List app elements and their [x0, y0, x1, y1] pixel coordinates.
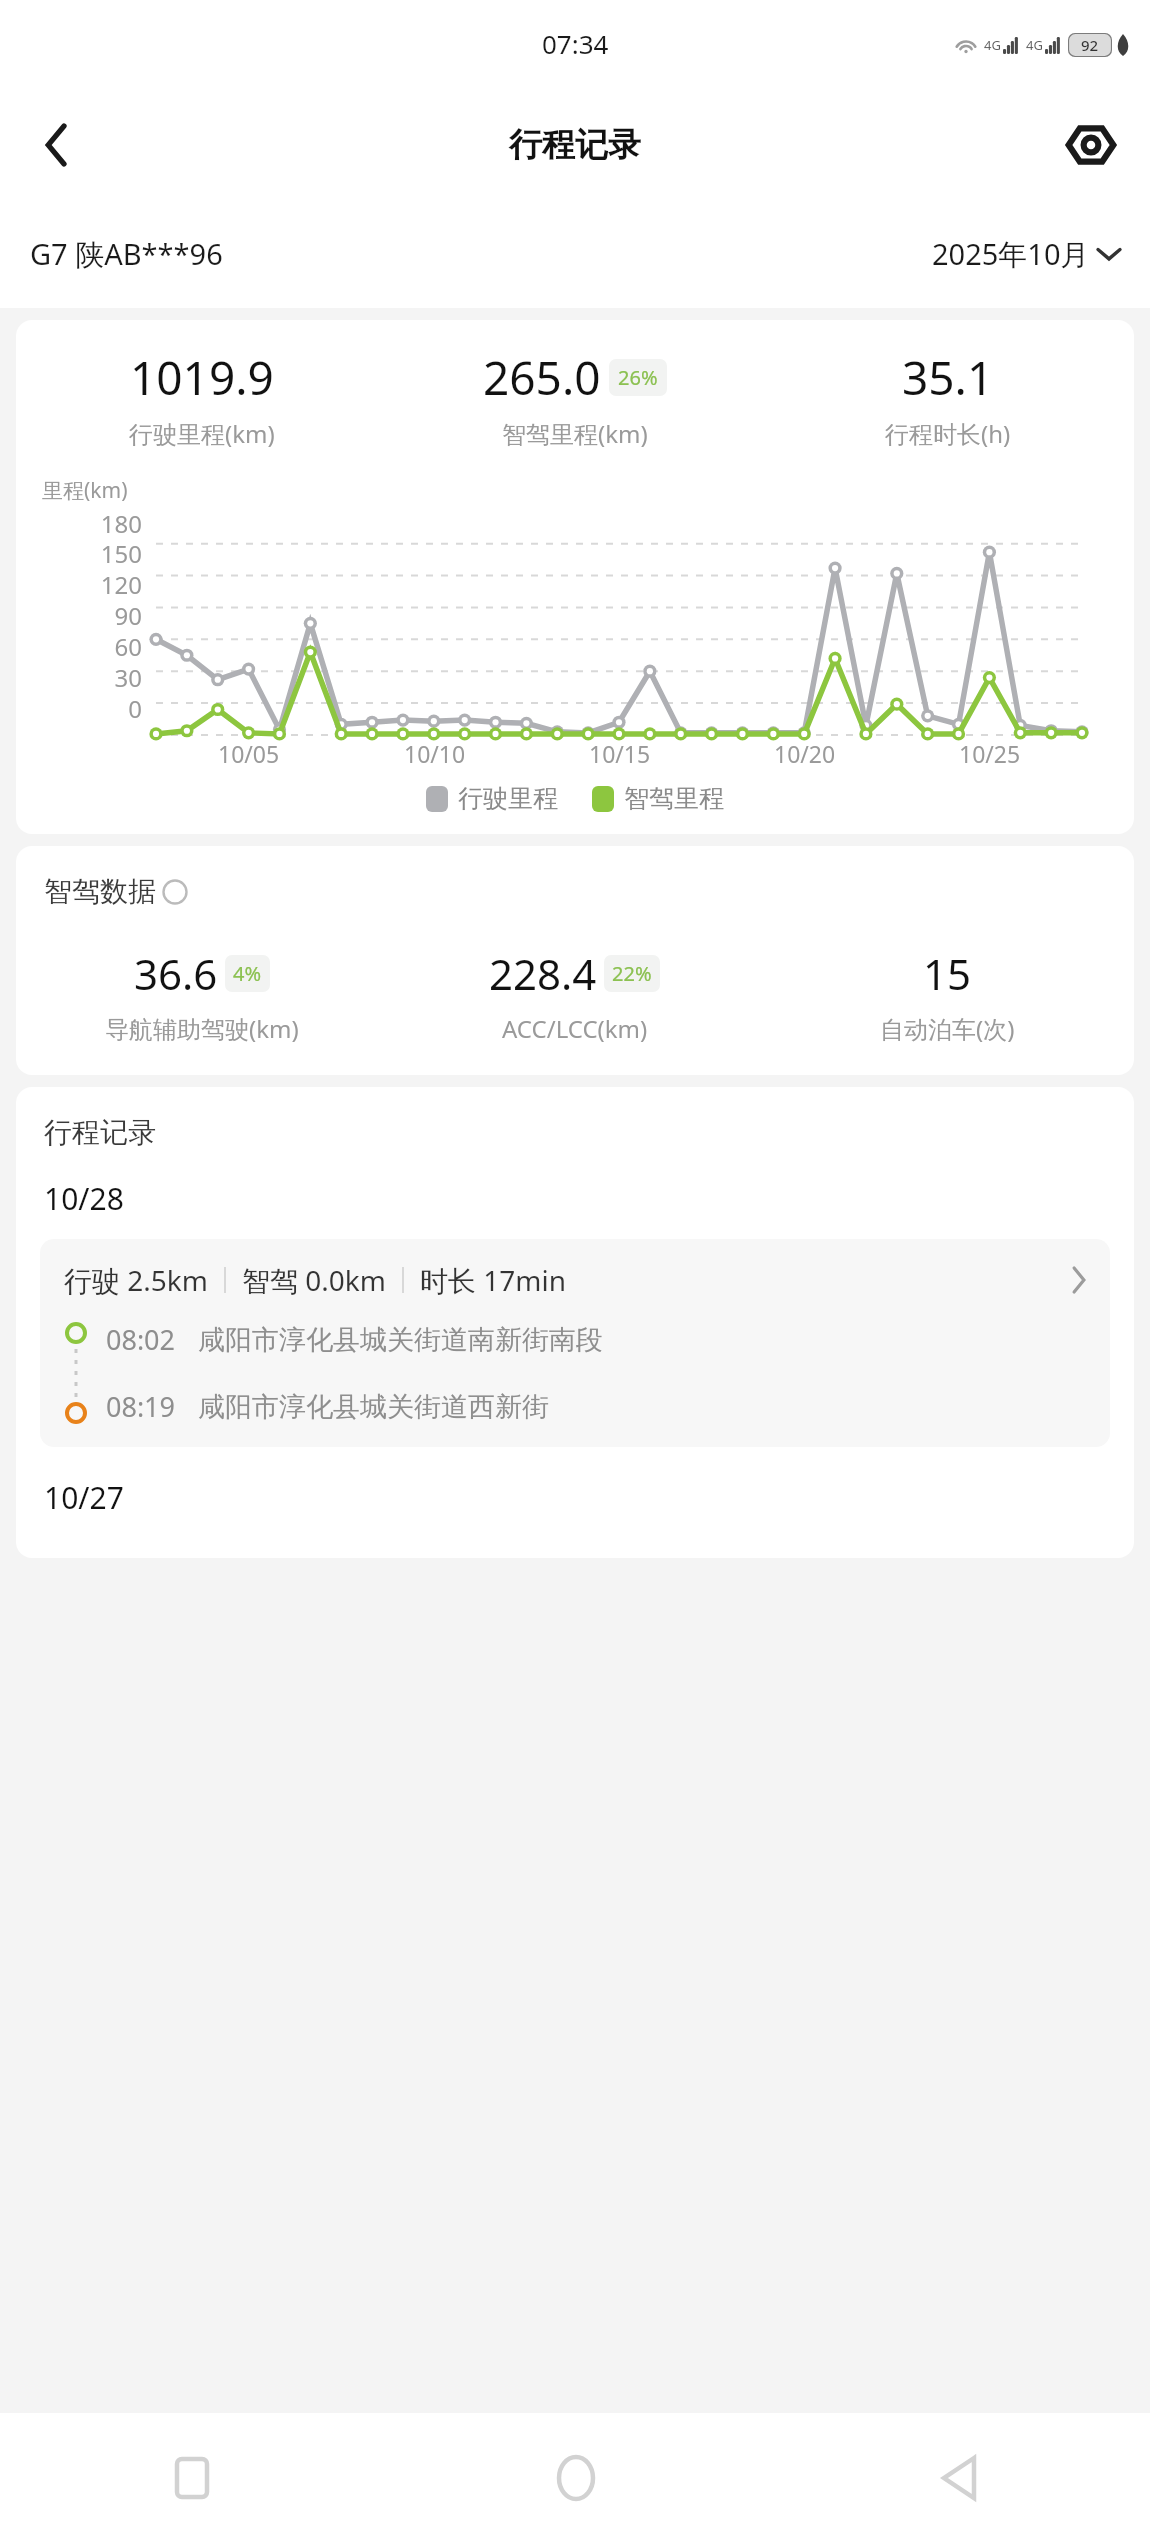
- staticText: 228.4: [489, 945, 597, 1002]
- staticText: 咸阳市淳化县城关街道西新街: [198, 1390, 549, 1424]
- staticText: 35.1: [902, 346, 994, 409]
- staticText: 行驶 2.5km: [64, 1261, 208, 1299]
- staticText: 10/27: [44, 1477, 124, 1518]
- staticText: 4%: [233, 960, 262, 987]
- staticText: 180: [100, 507, 142, 537]
- staticText: 1019.9: [130, 346, 274, 409]
- staticText: 15: [923, 945, 972, 1002]
- staticText: 120: [100, 568, 142, 599]
- staticText: 10/05: [218, 738, 280, 769]
- staticText: 智驾 0.0km: [242, 1261, 386, 1299]
- staticText: 10/25: [959, 738, 1021, 769]
- button[interactable]: Back: [28, 116, 86, 174]
- staticText: G7 陕AB***96: [30, 234, 223, 274]
- staticText: 26%: [618, 364, 658, 391]
- staticText: 36.6: [134, 945, 218, 1002]
- staticText: 行程时长(h): [885, 417, 1011, 450]
- staticText: 90: [114, 599, 142, 630]
- staticText: 行驶里程: [458, 783, 558, 814]
- staticText: 92: [1081, 35, 1099, 55]
- staticText: 4G: [984, 36, 1001, 54]
- staticText: 4G: [1026, 36, 1043, 54]
- staticText: 10/20: [774, 738, 836, 769]
- staticText: 时长 17min: [420, 1261, 567, 1299]
- staticText: 08:02: [106, 1321, 176, 1358]
- staticText: 导航辅助驾驶(km): [105, 1012, 299, 1045]
- staticText: 自动泊车(次): [880, 1012, 1015, 1045]
- staticText: 60: [114, 630, 142, 661]
- staticText: ACC/LCC(km): [502, 1012, 648, 1045]
- staticText: 0: [128, 692, 142, 723]
- staticText: 智驾里程(km): [502, 417, 648, 450]
- staticText: 咸阳市淳化县城关街道南新街南段: [198, 1323, 603, 1357]
- staticText: 30: [114, 661, 142, 692]
- button[interactable]: Settings: [1058, 112, 1124, 178]
- staticText: 150: [100, 537, 142, 568]
- staticText: 22%: [612, 960, 652, 987]
- staticText: 行程记录: [509, 124, 641, 166]
- staticText: 里程(km): [42, 476, 128, 505]
- staticText: 10/28: [44, 1178, 124, 1219]
- staticText: 07:34: [542, 26, 609, 61]
- button[interactable]: Back: [919, 2438, 999, 2518]
- staticText: 行驶里程(km): [129, 417, 275, 450]
- staticText: 行程记录: [44, 1115, 156, 1150]
- button[interactable]: 行驶 2.5km: [40, 1239, 1110, 1447]
- staticText: 08:19: [106, 1388, 176, 1425]
- staticText: 10/10: [404, 738, 466, 769]
- staticText: 265.0: [483, 346, 601, 409]
- button[interactable]: Home: [536, 2438, 616, 2518]
- staticText: 2025年10月: [932, 234, 1090, 274]
- staticText: 智驾数据: [44, 874, 156, 909]
- staticText: 10/15: [589, 738, 651, 769]
- button[interactable]: 智驾数据: [44, 874, 188, 909]
- button[interactable]: Recents: [152, 2438, 232, 2518]
- staticText: 智驾里程: [624, 783, 724, 814]
- button[interactable]: 2025年10月: [932, 234, 1120, 274]
